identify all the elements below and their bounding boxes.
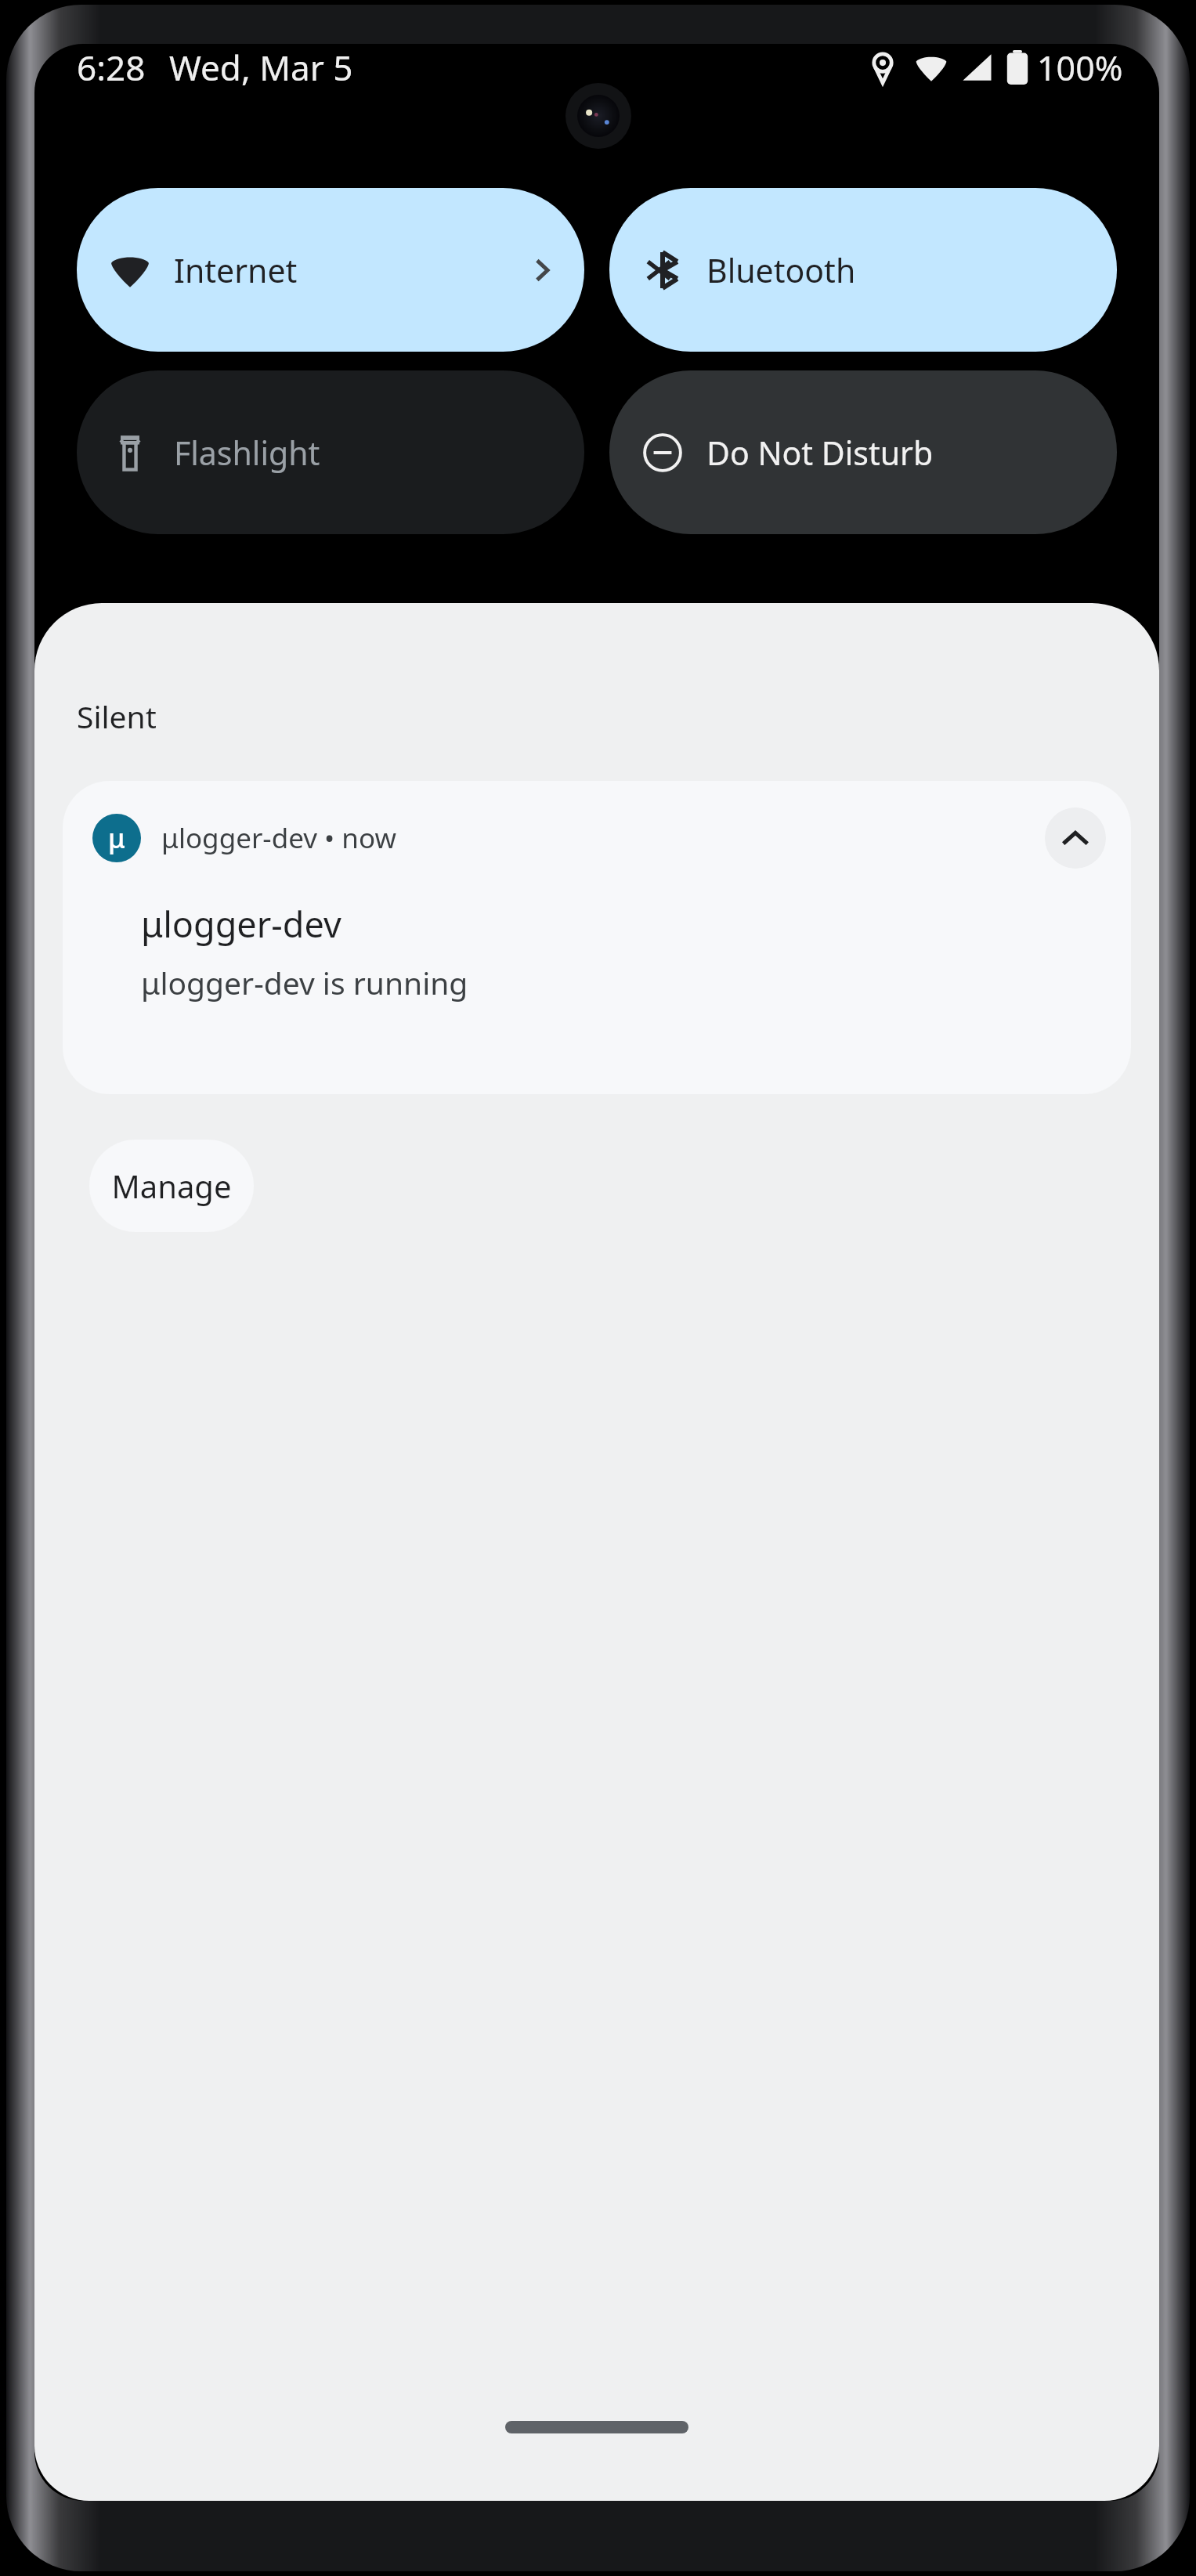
button[interactable]: Internet [77, 188, 584, 352]
staticText: μlogger-dev [141, 900, 341, 948]
staticText: 100% [1037, 45, 1123, 91]
button[interactable]: Bluetooth [609, 188, 1117, 352]
staticText: Flashlight [174, 431, 320, 475]
button[interactable]: μ [63, 781, 1131, 1094]
staticText: Bluetooth [706, 248, 856, 292]
staticText: Wed, Mar 5 [169, 44, 353, 91]
button[interactable]: Flashlight [77, 370, 584, 534]
staticText: Internet [174, 248, 298, 292]
staticText: Silent [77, 695, 157, 737]
button[interactable]: Do Not Disturb [609, 370, 1117, 534]
staticText: μlogger-dev is running [141, 962, 468, 1003]
staticText: μ [108, 820, 125, 856]
staticText: Manage [111, 1165, 232, 1207]
button[interactable]: Collapse notification [1045, 807, 1106, 869]
button[interactable]: Manage [89, 1140, 254, 1232]
staticText: Do Not Disturb [706, 431, 934, 475]
staticText: μlogger-dev • now [161, 819, 396, 857]
staticText: 6:28 [77, 44, 146, 91]
